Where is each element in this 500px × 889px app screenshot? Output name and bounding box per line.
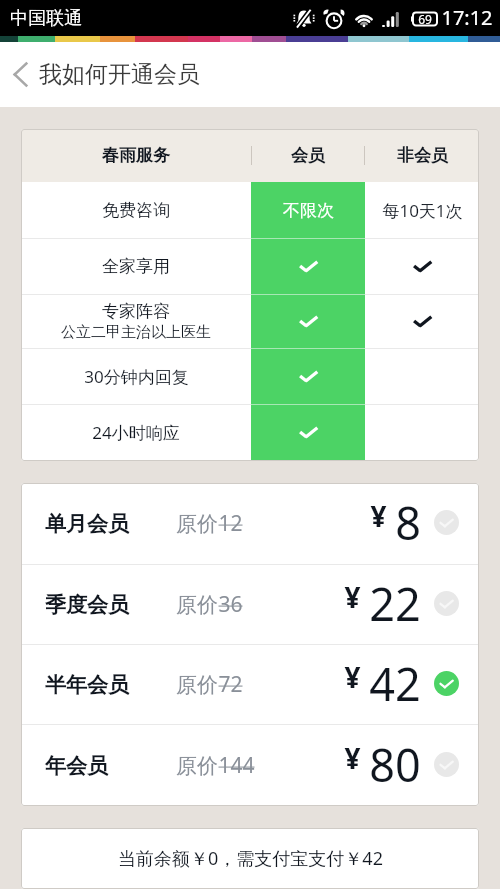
other: Select plan [434,752,459,777]
staticText: 原价 [176,753,218,779]
staticText: 年会员 [45,753,108,779]
staticText: 144 [218,751,255,780]
staticText: 单月会员 [45,511,129,537]
staticText: 69 [418,11,432,27]
staticText: 12 [218,509,243,538]
button[interactable]: 单月会员 [21,483,479,564]
staticText: 专家阵容 [102,301,170,322]
staticText: 每10天1次 [382,199,463,222]
staticText: 80 [369,734,421,795]
staticText: 30分钟内回复 [84,365,189,388]
other: Select plan [434,671,459,696]
staticText: 非会员 [397,145,448,166]
staticText: 原价 [176,672,218,698]
button[interactable]: 半年会员 [21,645,479,724]
staticText: 春雨服务 [102,145,170,166]
staticText: 公立二甲主治以上医生 [61,323,211,342]
other: Select plan [434,510,459,535]
staticText: 我如何开通会员 [39,60,200,89]
button[interactable]: Back [0,42,216,107]
staticText: 72 [218,670,243,699]
staticText: 42 [369,653,421,714]
staticText: ¥ [344,578,361,616]
staticText: 原价 [176,511,218,537]
staticText: 免费咨询 [102,200,170,221]
button[interactable]: 季度会员 [21,565,479,644]
staticText: 24小时响应 [92,421,180,444]
staticText: 36 [218,590,243,619]
staticText: 22 [369,573,421,634]
staticText: 不限次 [283,200,334,221]
staticText: 会员 [291,145,325,166]
staticText: 全家享用 [102,256,170,277]
button[interactable]: 年会员 [21,725,479,806]
other: Back [13,62,27,87]
staticText: ¥ [344,658,361,696]
staticText: 季度会员 [45,592,129,618]
staticText: 原价 [176,592,218,618]
staticText: ¥ [370,497,387,535]
staticText: 中国联通 [10,7,82,30]
staticText: 当前余额￥0，需支付宝支付￥42 [118,846,383,871]
staticText: ¥ [344,739,361,777]
staticText: 半年会员 [45,672,129,698]
staticText: 17:12 [441,4,493,31]
staticText: 8 [395,492,421,553]
other: Select plan [434,591,459,616]
